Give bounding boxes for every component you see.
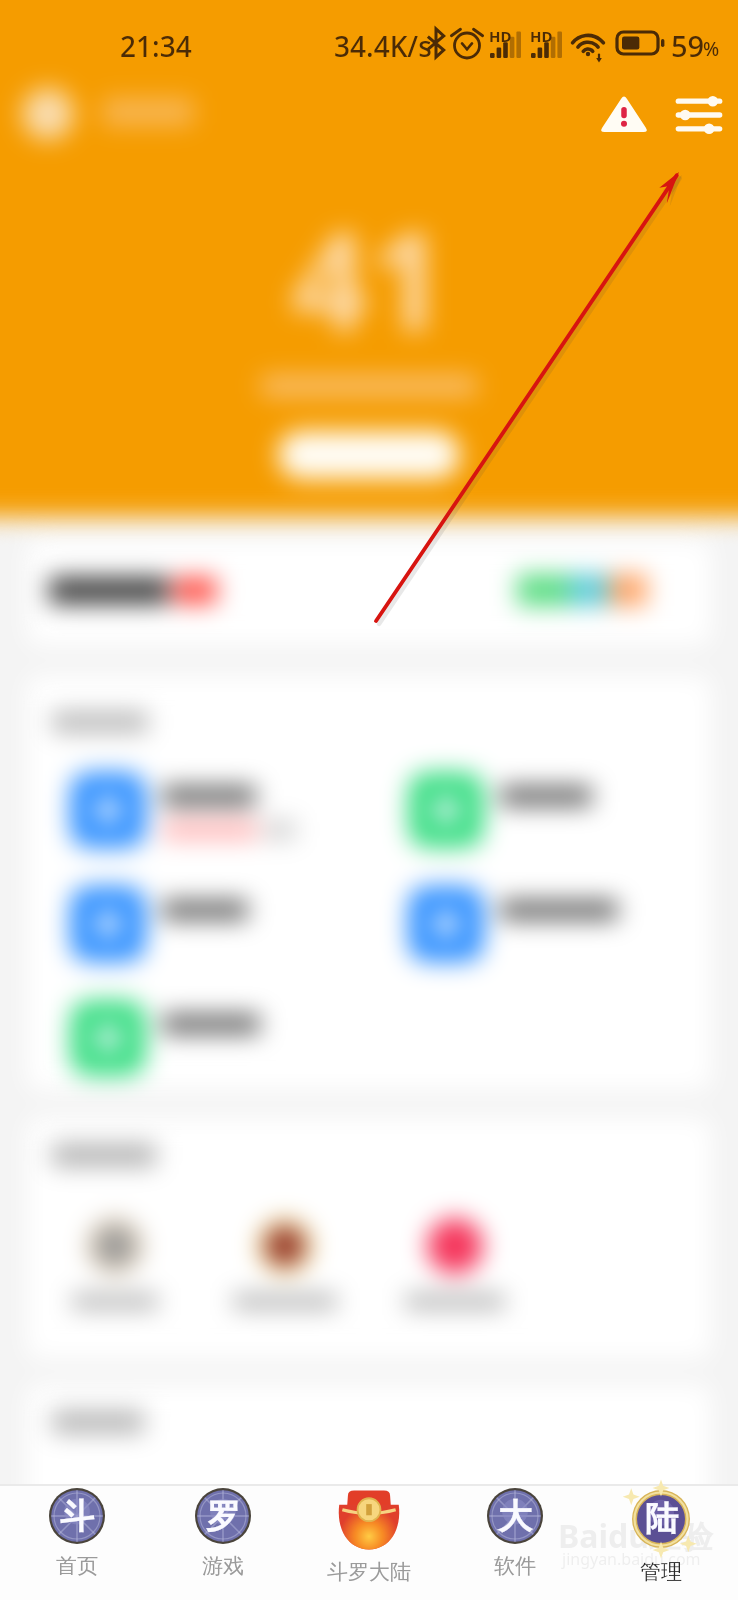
- staticText: 41: [291, 186, 447, 371]
- button[interactable]: 斗: [8, 1484, 146, 1600]
- staticText: 大: [498, 1495, 532, 1538]
- button[interactable]: Feature item: [54, 990, 354, 1086]
- button[interactable]: App shortcut: [87, 1210, 197, 1320]
- button[interactable]: 斗罗大陆: [300, 1484, 438, 1600]
- staticText: 软件: [494, 1553, 536, 1579]
- staticText: 游戏: [202, 1553, 244, 1579]
- button[interactable]: Feature item: [392, 762, 692, 858]
- staticText: Baidu经验: [558, 1514, 714, 1558]
- button[interactable]: Status row: [27, 540, 711, 645]
- staticText: jingyan.baidu.com: [562, 1548, 701, 1570]
- staticText: HD: [489, 26, 512, 46]
- button[interactable]: Account: [16, 80, 216, 150]
- button[interactable]: Feature item: [392, 876, 692, 972]
- button[interactable]: Settings: [676, 92, 722, 138]
- staticText: 21:34: [120, 27, 192, 65]
- button[interactable]: 大: [446, 1484, 584, 1600]
- button[interactable]: Feature item: [54, 762, 354, 858]
- button[interactable]: App shortcut: [427, 1210, 537, 1320]
- button[interactable]: 陆: [592, 1484, 730, 1600]
- staticText: 34.4K/s: [334, 27, 432, 65]
- button[interactable]: Clean up: [278, 420, 460, 470]
- button[interactable]: Feature item: [54, 876, 354, 972]
- staticText: 陆: [645, 1498, 678, 1540]
- button[interactable]: Warning: [598, 87, 650, 139]
- button[interactable]: 罗: [154, 1484, 292, 1600]
- staticText: 首页: [56, 1553, 98, 1579]
- staticText: 59: [671, 26, 705, 65]
- button[interactable]: App shortcut: [257, 1210, 367, 1320]
- staticText: 管理: [640, 1559, 682, 1585]
- staticText: 斗罗大陆: [327, 1559, 411, 1585]
- staticText: 斗: [60, 1495, 94, 1538]
- staticText: 罗: [206, 1495, 240, 1538]
- staticText: %: [703, 36, 720, 62]
- staticText: HD: [530, 26, 553, 46]
